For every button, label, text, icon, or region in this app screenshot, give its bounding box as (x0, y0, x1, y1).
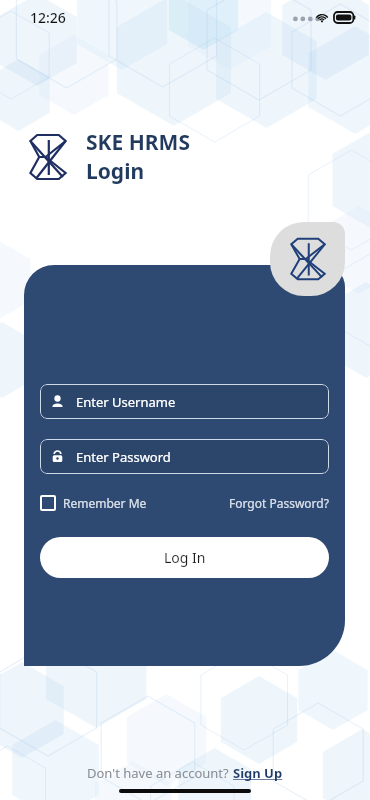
staticText: Remember Me (63, 495, 147, 511)
button[interactable]: Remember Me (40, 495, 147, 511)
button[interactable]: Enter Username (40, 384, 329, 419)
button[interactable]: Don't have an account? (87, 764, 283, 782)
staticText: Log In (164, 548, 206, 567)
staticText: SKE HRMS (86, 128, 190, 157)
button[interactable]: Forgot Password? (229, 495, 329, 511)
staticText: Enter Username (76, 393, 176, 411)
staticText: Sign Up (233, 764, 283, 782)
button[interactable]: Log In (40, 537, 329, 578)
button[interactable]: Enter Password (40, 439, 329, 474)
staticText: Login (86, 157, 145, 186)
staticText: 12:26 (30, 8, 66, 27)
other: SKE HRMS logo (270, 222, 345, 296)
staticText: Don't have an account? (87, 764, 233, 782)
staticText: Enter Password (76, 448, 171, 466)
